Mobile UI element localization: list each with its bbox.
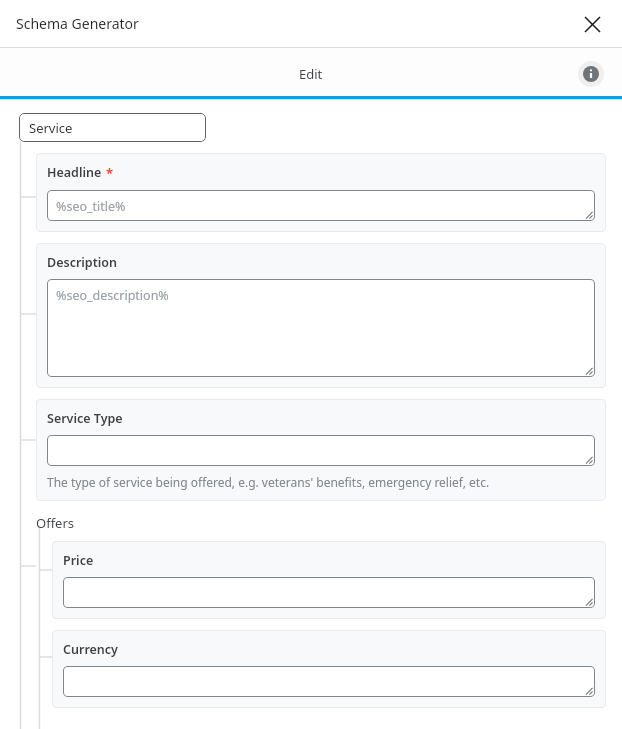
button[interactable]: Service xyxy=(19,113,206,142)
staticText: * xyxy=(106,164,114,182)
button[interactable] xyxy=(47,435,595,466)
staticText: Service Type xyxy=(47,410,123,427)
staticText: Service xyxy=(29,119,73,137)
button[interactable]: %seo_title% xyxy=(47,190,595,221)
button[interactable]: Edit xyxy=(0,48,622,99)
staticText: Headline xyxy=(47,164,102,181)
button[interactable]: %seo_description% xyxy=(47,279,595,377)
staticText: Currency xyxy=(63,641,118,658)
staticText: Schema Generator xyxy=(16,14,139,33)
button[interactable] xyxy=(63,577,595,608)
staticText: Edit xyxy=(299,65,323,83)
button[interactable]: Info xyxy=(578,61,604,87)
staticText: Offers xyxy=(36,514,75,532)
staticText: Description xyxy=(47,254,117,271)
staticText: %seo_description% xyxy=(56,287,169,304)
button[interactable] xyxy=(63,666,595,697)
button[interactable]: Close xyxy=(576,8,608,40)
staticText: Price xyxy=(63,552,94,569)
staticText: %seo_title% xyxy=(56,198,126,215)
staticText: The type of service being offered, e.g. … xyxy=(47,474,490,490)
